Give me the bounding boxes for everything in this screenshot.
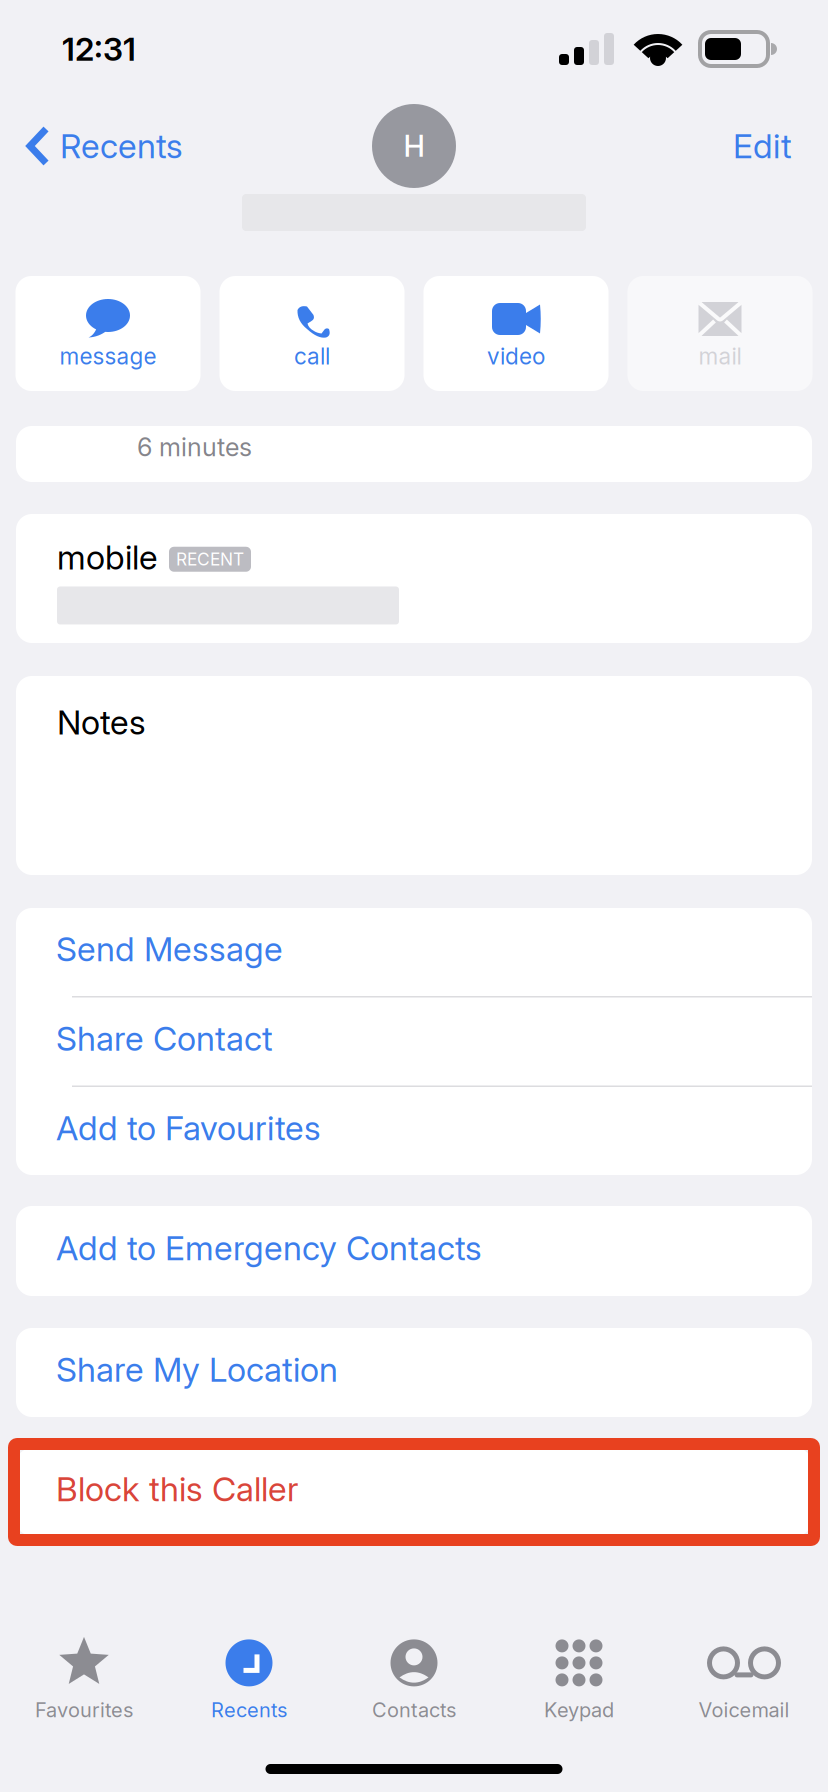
staticText: H [403,128,424,164]
button[interactable]: Share My Location [16,1328,812,1417]
staticText: Contacts [372,1698,456,1722]
staticText: Add to Emergency Contacts [56,1228,482,1268]
button[interactable]: Block this Caller [16,1448,812,1536]
button[interactable]: Contacts [331,1632,496,1722]
staticText: call [294,343,330,370]
button[interactable]: Edit [711,110,814,182]
staticText: message [59,343,156,370]
button[interactable]: Send Message [16,908,812,996]
staticText: Add to Favourites [56,1108,321,1148]
staticText: Share Contact [56,1018,273,1059]
staticText: Recents [60,126,183,166]
button[interactable]: Favourites [1,1632,166,1722]
button[interactable]: Voicemail [661,1632,826,1722]
button[interactable]: Add to Favourites [16,1087,812,1175]
button[interactable]: Keypad [496,1632,661,1722]
staticText: Notes [57,702,146,742]
staticText: Recents [211,1698,287,1722]
staticText: 6 minutes [137,432,252,462]
button[interactable]: video [423,276,608,391]
staticText: RECENT [176,549,244,570]
staticText: video [487,343,545,370]
staticText: mail [698,343,741,370]
button[interactable]: call [219,276,404,391]
staticText: 12:31 [62,30,136,68]
staticText: Send Message [56,929,283,969]
button[interactable]: message [15,276,200,391]
staticText: Block this Caller [56,1469,298,1509]
staticText: Share My Location [56,1349,338,1390]
staticText: Edit [733,126,792,166]
staticText: Keypad [544,1698,614,1722]
button[interactable]: mail [627,276,812,391]
button[interactable]: Recents [0,110,201,182]
button[interactable]: Recents [166,1632,331,1722]
staticText: mobile [57,537,158,577]
staticText: Favourites [35,1698,133,1722]
button[interactable]: Add to Emergency Contacts [16,1206,812,1296]
staticText: Voicemail [698,1698,789,1722]
button[interactable]: Share Contact [16,997,812,1085]
button[interactable]: Contact photo [372,104,456,188]
